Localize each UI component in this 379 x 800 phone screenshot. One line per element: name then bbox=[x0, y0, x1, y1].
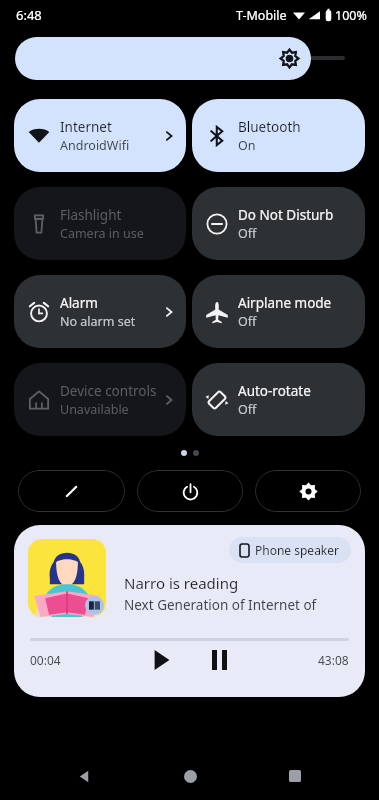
button[interactable]: Home bbox=[168, 754, 212, 798]
button[interactable]: Edit tiles bbox=[18, 470, 125, 512]
staticText: Off bbox=[238, 225, 257, 242]
button[interactable]: Do Not Disturb bbox=[192, 187, 365, 260]
button[interactable]: Power bbox=[137, 470, 243, 512]
button[interactable]: Device controls bbox=[14, 363, 186, 436]
button[interactable]: Bluetooth bbox=[192, 99, 365, 172]
staticText: Phone speaker bbox=[255, 542, 340, 558]
staticText: No alarm set bbox=[60, 313, 136, 330]
staticText: 6:48 bbox=[16, 6, 42, 24]
staticText: Do Not Disturb bbox=[238, 206, 334, 224]
staticText: Airplane mode bbox=[238, 294, 332, 312]
staticText: Alarm bbox=[60, 294, 98, 312]
button[interactable]: Recent apps bbox=[273, 754, 317, 798]
button[interactable]: Phone speaker bbox=[14, 525, 365, 697]
staticText: On bbox=[238, 137, 256, 154]
staticText: Internet bbox=[60, 118, 112, 136]
staticText: Auto-rotate bbox=[238, 382, 311, 400]
staticText: 100% bbox=[335, 7, 367, 24]
staticText: Next Generation of Internet of Thin… bbox=[124, 596, 351, 614]
staticText: Narro is reading bbox=[124, 573, 239, 593]
staticText: T-Mobile bbox=[236, 7, 287, 24]
button[interactable]: Internet bbox=[14, 99, 186, 172]
staticText: AndroidWifi bbox=[60, 137, 130, 154]
staticText: Flashlight bbox=[60, 206, 122, 224]
button[interactable]: Phone speaker bbox=[229, 537, 351, 563]
staticText: Off bbox=[238, 401, 257, 418]
button[interactable]: Pause bbox=[204, 645, 234, 675]
staticText: Device controls bbox=[60, 382, 157, 400]
button[interactable]: Auto-rotate bbox=[192, 363, 365, 436]
button[interactable]: Alarm bbox=[14, 275, 186, 348]
button[interactable]: Brightness bbox=[15, 37, 311, 80]
staticText: Off bbox=[238, 313, 257, 330]
staticText: 00:04 bbox=[30, 652, 61, 668]
staticText: Bluetooth bbox=[238, 118, 301, 136]
button[interactable]: Airplane mode bbox=[192, 275, 365, 348]
staticText: Camera in use bbox=[60, 225, 144, 242]
button[interactable]: Back bbox=[62, 754, 106, 798]
button[interactable]: Settings bbox=[255, 470, 361, 512]
button[interactable]: Play bbox=[146, 645, 176, 675]
staticText: 43:08 bbox=[318, 652, 349, 668]
button[interactable]: Flashlight bbox=[14, 187, 186, 260]
staticText: Unavailable bbox=[60, 401, 129, 418]
